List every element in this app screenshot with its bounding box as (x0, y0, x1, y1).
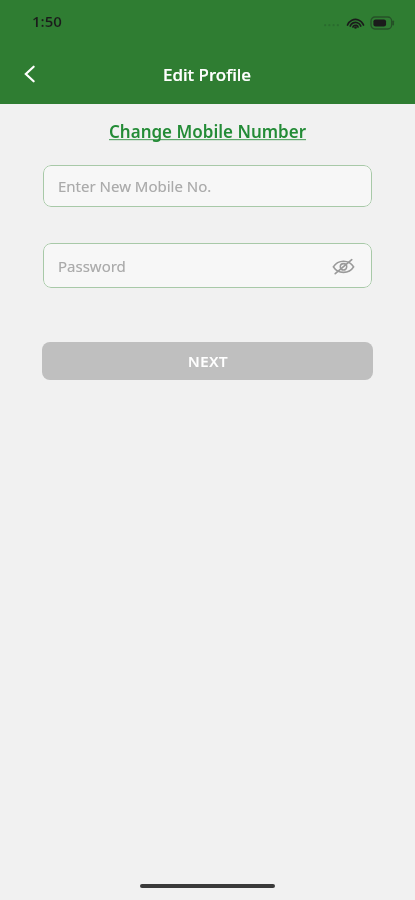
staticText: Edit Profile (163, 63, 252, 86)
button[interactable]: NEXT (42, 342, 373, 380)
staticText: NEXT (188, 351, 228, 371)
button[interactable]: Change Mobile Number (109, 120, 307, 143)
staticText: Change Mobile Number (109, 120, 307, 143)
staticText: Password (58, 256, 126, 276)
button[interactable]: Show password (328, 251, 358, 281)
button[interactable]: Back (8, 52, 52, 96)
staticText: Enter New Mobile No. (58, 176, 212, 196)
button[interactable]: Password (43, 243, 372, 288)
staticText: 1:50 (32, 11, 62, 31)
button[interactable]: Enter New Mobile No. (43, 165, 372, 207)
